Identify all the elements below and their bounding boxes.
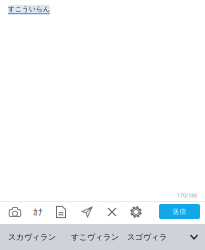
button[interactable]: Templates [50,201,72,223]
button[interactable]: スゴヴィラ [125,224,169,250]
button[interactable]: Clear text [101,201,123,223]
staticText: すこういらん [8,5,50,13]
button[interactable]: すこヴィラン [69,224,121,250]
button[interactable]: Settings [125,201,147,223]
button[interactable]: More candidates [183,224,205,250]
staticText: すこヴィラン [71,232,119,242]
staticText: 送信 [172,207,186,216]
staticText: 170/188 [177,192,197,199]
button[interactable]: Location [76,201,98,223]
staticText: スカヴィラン [8,232,56,242]
button[interactable]: Camera [4,201,26,223]
staticText: スゴヴィラ [127,232,167,242]
button[interactable]: 送信 [159,204,200,219]
button[interactable]: スカヴィラン [4,224,60,250]
button[interactable]: ｶﾅ [27,201,49,223]
staticText: ｶﾅ [33,207,43,216]
